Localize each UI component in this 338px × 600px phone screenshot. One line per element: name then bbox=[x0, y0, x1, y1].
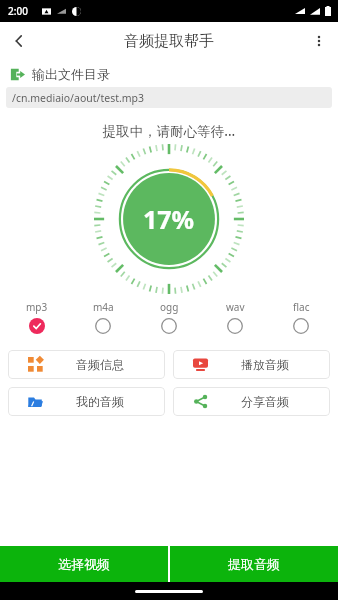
staticText: 输出文件目录 bbox=[32, 66, 110, 82]
button[interactable]: Back bbox=[0, 22, 38, 60]
button[interactable]: flac bbox=[278, 298, 324, 336]
button[interactable]: /cn.mediaio/aout/test.mp3 bbox=[6, 87, 332, 108]
staticText: 我的音频 bbox=[76, 394, 124, 409]
button[interactable]: mp3 bbox=[14, 298, 60, 336]
button[interactable]: 音频信息 bbox=[8, 350, 165, 379]
button[interactable]: ogg bbox=[146, 298, 192, 336]
staticText: 分享音频 bbox=[241, 394, 289, 409]
staticText: ogg bbox=[160, 300, 179, 314]
staticText: flac bbox=[293, 300, 310, 314]
staticText: /cn.mediaio/aout/test.mp3 bbox=[12, 91, 145, 105]
staticText: 选择视频 bbox=[58, 556, 110, 572]
staticText: 17% bbox=[143, 202, 195, 236]
button[interactable]: 我的音频 bbox=[8, 387, 165, 416]
staticText: m4a bbox=[93, 300, 114, 314]
button[interactable]: wav bbox=[212, 298, 258, 336]
staticText: 音频提取帮手 bbox=[124, 32, 214, 51]
staticText: 音频信息 bbox=[76, 357, 124, 372]
staticText: 2:00 bbox=[8, 4, 28, 18]
button[interactable]: 提取音频 bbox=[170, 546, 338, 582]
staticText: 提取中，请耐心等待... bbox=[0, 122, 338, 140]
button[interactable]: 分享音频 bbox=[173, 387, 330, 416]
button[interactable]: 播放音频 bbox=[173, 350, 330, 379]
button[interactable]: 选择视频 bbox=[0, 546, 168, 582]
staticText: 提取音频 bbox=[228, 556, 280, 572]
staticText: 播放音频 bbox=[241, 357, 289, 372]
button[interactable]: m4a bbox=[80, 298, 126, 336]
staticText: wav bbox=[226, 300, 245, 314]
staticText: mp3 bbox=[26, 300, 48, 314]
button[interactable]: More options bbox=[300, 22, 338, 60]
